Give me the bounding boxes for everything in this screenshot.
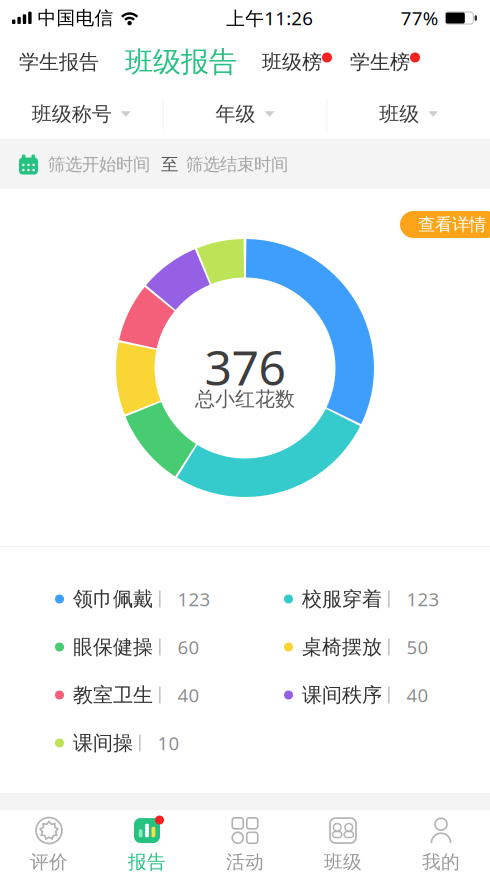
staticText: 眼保健操 bbox=[73, 635, 153, 659]
staticText: 课间秩序 bbox=[302, 683, 382, 707]
staticText: 学生报告 bbox=[19, 50, 99, 74]
staticText: 班级榜 bbox=[262, 50, 322, 74]
staticText: 77% bbox=[401, 6, 439, 30]
staticText: 我的 bbox=[422, 850, 460, 873]
staticText: 至 bbox=[161, 154, 178, 175]
staticText: 班级 bbox=[324, 850, 362, 873]
staticText: 校服穿着 bbox=[302, 587, 382, 611]
staticText: 10 bbox=[158, 731, 180, 755]
staticText: 中国电信 bbox=[38, 6, 114, 29]
staticText: 376 bbox=[204, 335, 285, 399]
button[interactable]: 筛选开始时间 bbox=[38, 145, 150, 184]
staticText: 活动 bbox=[226, 850, 264, 873]
button[interactable]: 班级 bbox=[294, 810, 392, 876]
staticText: 学生榜 bbox=[350, 50, 410, 74]
button[interactable]: 年级 bbox=[164, 88, 326, 140]
button[interactable]: 班级称号 bbox=[0, 88, 163, 140]
staticText: 40 bbox=[178, 683, 200, 707]
staticText: 班级称号 bbox=[32, 102, 112, 126]
staticText: 筛选结束时间 bbox=[186, 154, 288, 175]
button[interactable]: 班级报告 bbox=[125, 36, 262, 88]
button[interactable]: 我的 bbox=[392, 810, 490, 876]
staticText: 领巾佩戴 bbox=[73, 587, 153, 611]
button[interactable]: 评价 bbox=[0, 810, 98, 876]
staticText: 教室卫生 bbox=[73, 683, 153, 707]
button[interactable]: 筛选结束时间 bbox=[178, 145, 288, 184]
button[interactable]: 学生榜 bbox=[350, 36, 420, 88]
staticText: 课间操 bbox=[73, 731, 133, 755]
staticText: 报告 bbox=[128, 850, 166, 873]
button[interactable]: 班级 bbox=[327, 88, 490, 140]
staticText: 50 bbox=[407, 635, 429, 659]
staticText: 年级 bbox=[215, 102, 255, 126]
staticText: 123 bbox=[407, 587, 440, 611]
staticText: 60 bbox=[178, 635, 200, 659]
button[interactable]: 查看详情 bbox=[400, 211, 490, 238]
staticText: 班级报告 bbox=[125, 45, 237, 79]
staticText: 上午11:26 bbox=[226, 6, 313, 30]
button[interactable]: 活动 bbox=[196, 810, 294, 876]
button[interactable]: 学生报告 bbox=[0, 36, 125, 88]
staticText: 筛选开始时间 bbox=[48, 154, 150, 175]
button[interactable]: 报告 bbox=[98, 810, 196, 876]
staticText: 班级 bbox=[379, 102, 419, 126]
button[interactable]: 班级榜 bbox=[262, 36, 350, 88]
staticText: 评价 bbox=[30, 850, 68, 873]
staticText: 123 bbox=[178, 587, 211, 611]
staticText: 桌椅摆放 bbox=[302, 635, 382, 659]
staticText: 总小红花数 bbox=[195, 387, 295, 411]
staticText: 40 bbox=[407, 683, 429, 707]
staticText: 查看详情 bbox=[418, 214, 486, 235]
